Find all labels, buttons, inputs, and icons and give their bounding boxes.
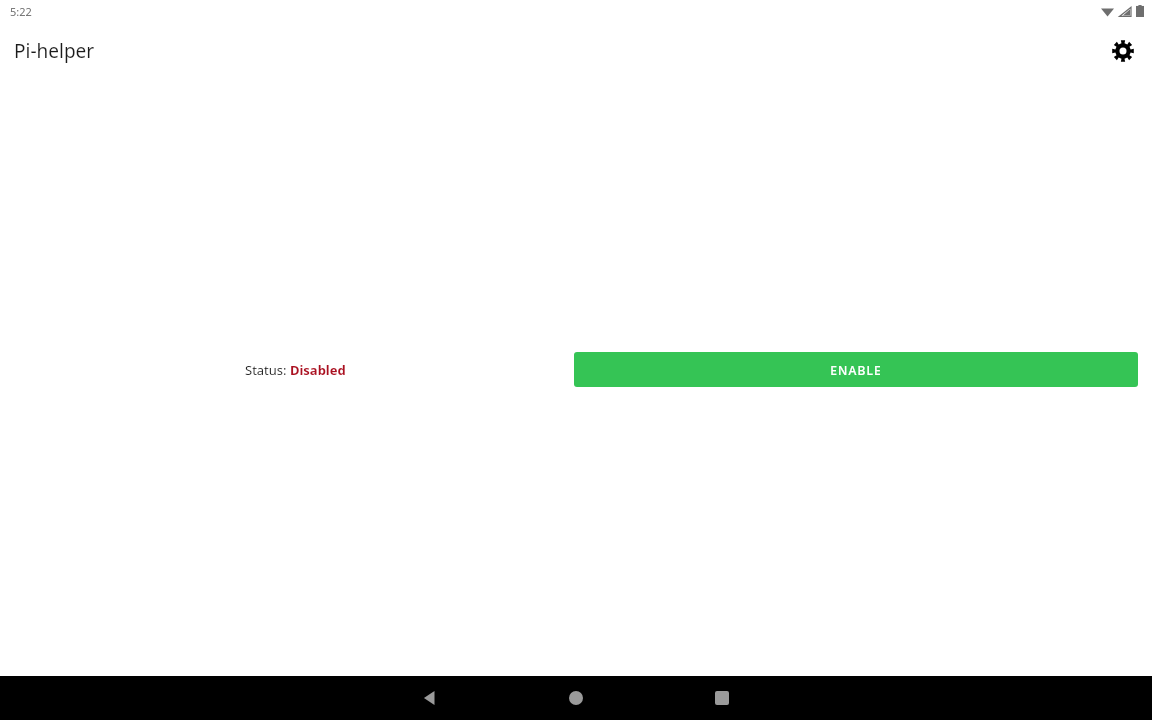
staticText: Status: Disabled	[245, 361, 346, 379]
button[interactable]: Recent apps	[698, 676, 746, 720]
button[interactable]: Settings	[1108, 36, 1138, 66]
button[interactable]: Back	[406, 676, 454, 720]
button[interactable]: Home	[552, 676, 600, 720]
staticText: 5:22	[10, 4, 32, 19]
button[interactable]: ENABLE	[574, 352, 1138, 387]
staticText: ENABLE	[830, 362, 882, 378]
staticText: Pi-helper	[14, 38, 95, 64]
